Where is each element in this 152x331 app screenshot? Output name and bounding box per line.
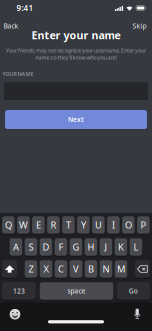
button[interactable]: U [92, 216, 105, 234]
staticText: I [112, 219, 115, 231]
staticText: Your friends may not recognize your user… [6, 47, 146, 54]
staticText: Next [68, 115, 84, 124]
button[interactable] [132, 308, 142, 319]
staticText: P [140, 219, 146, 231]
button[interactable]: D [40, 238, 52, 256]
button[interactable]: Next [5, 110, 147, 129]
staticText: R [50, 219, 56, 231]
button[interactable]: J [100, 238, 112, 256]
button[interactable]: M [115, 260, 127, 278]
button[interactable]: E [32, 216, 45, 234]
staticText: E [36, 219, 41, 231]
staticText: C [58, 263, 64, 275]
button[interactable]: Z [25, 260, 37, 278]
staticText: J [104, 241, 107, 253]
staticText: X [43, 263, 48, 275]
button[interactable]: R [47, 216, 60, 234]
staticText: T [66, 219, 71, 231]
staticText: 9:41 [16, 3, 33, 13]
staticText: A [13, 241, 19, 253]
staticText: H [87, 241, 94, 253]
button[interactable]: F [55, 238, 67, 256]
staticText: Back [3, 22, 18, 30]
staticText: Go [129, 287, 138, 295]
button[interactable]: space [40, 282, 113, 300]
button[interactable]: P [137, 216, 150, 234]
staticText: V [73, 263, 79, 275]
staticText: W [19, 219, 28, 231]
staticText: U [95, 219, 102, 231]
staticText: Z [28, 263, 33, 275]
button[interactable]: H [85, 238, 97, 256]
button[interactable]: Q [2, 216, 15, 234]
staticText: Enter your name [31, 28, 120, 42]
button[interactable]: A [10, 238, 22, 256]
button[interactable] [9, 309, 20, 320]
button[interactable]: B [85, 260, 97, 278]
button[interactable]: L [130, 238, 142, 256]
staticText: Skip [132, 22, 146, 30]
staticText: O [125, 219, 132, 231]
staticText: D [42, 241, 49, 253]
button[interactable]: X [40, 260, 52, 278]
staticText: YOUR NAME [2, 70, 33, 78]
button[interactable]: Go [117, 282, 150, 300]
button[interactable]: Skip [132, 22, 146, 30]
button[interactable]: Y [77, 216, 90, 234]
button[interactable]: K [115, 238, 127, 256]
button[interactable]: N [100, 260, 112, 278]
button[interactable]: S [25, 238, 37, 256]
button[interactable]: V [70, 260, 82, 278]
staticText: name so they'll know who you are! [35, 54, 116, 61]
button[interactable]: W [17, 216, 30, 234]
staticText: G [72, 241, 79, 253]
button[interactable]: G [70, 238, 82, 256]
staticText: L [133, 241, 138, 253]
staticText: Y [81, 219, 86, 231]
button[interactable] [135, 260, 150, 278]
button[interactable]: 123 [2, 282, 36, 300]
staticText: F [58, 241, 63, 253]
staticText: N [102, 263, 109, 275]
button[interactable]: I [107, 216, 120, 234]
button[interactable] [2, 260, 17, 278]
button[interactable]: O [122, 216, 135, 234]
staticText: 123 [13, 287, 25, 295]
staticText: B [88, 263, 94, 275]
staticText: K [118, 241, 124, 253]
staticText: Q [5, 219, 12, 231]
staticText: S [28, 241, 33, 253]
button[interactable]: Back [3, 22, 18, 30]
staticText: M [117, 263, 125, 275]
button[interactable]: T [62, 216, 75, 234]
button[interactable]: C [55, 260, 67, 278]
staticText: space [67, 287, 85, 295]
